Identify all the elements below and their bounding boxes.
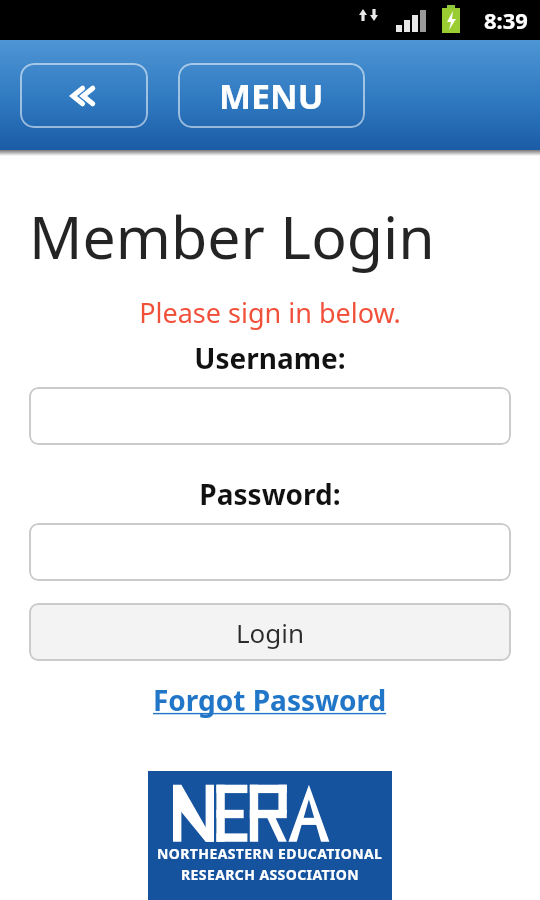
staticText: Member Login xyxy=(29,196,435,276)
staticText: Username: xyxy=(0,339,540,377)
button[interactable]: Password input xyxy=(29,523,511,581)
staticText: Password: xyxy=(0,475,540,513)
staticText: Login xyxy=(236,615,305,650)
button[interactable]: Back xyxy=(20,63,148,128)
staticText: RESEARCH ASSOCIATION xyxy=(181,865,360,884)
staticText: Please sign in below. xyxy=(0,294,540,331)
staticText: Forgot Password xyxy=(153,681,387,719)
staticText: NORTHEASTERN EDUCATIONAL xyxy=(157,844,383,863)
button[interactable]: Login xyxy=(29,603,511,661)
button[interactable]: MENU xyxy=(178,63,365,128)
staticText: 8:39 xyxy=(484,5,528,35)
staticText: MENU xyxy=(219,73,324,119)
button[interactable]: Username input xyxy=(29,387,511,445)
button[interactable]: Forgot Password xyxy=(153,681,387,719)
